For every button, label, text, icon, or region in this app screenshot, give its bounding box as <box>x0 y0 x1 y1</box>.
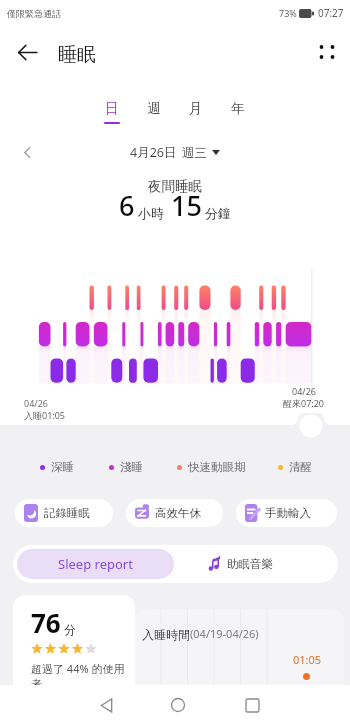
staticText: 入睡時間 <box>142 627 190 642</box>
staticText: 分鐘 <box>205 205 231 221</box>
staticText: Sleep report <box>58 555 133 573</box>
button[interactable]: 年 <box>217 99 259 125</box>
staticText: 淺睡 <box>120 460 143 474</box>
staticText: 73% <box>279 7 297 19</box>
staticText: 月 <box>189 100 203 117</box>
staticText: 記錄睡眠 <box>44 506 90 520</box>
staticText: 助眠音樂 <box>227 557 273 571</box>
staticText: 01:05 <box>293 652 322 667</box>
button[interactable]: 手動輸入 <box>236 499 337 527</box>
staticText: 手動輸入 <box>265 506 311 520</box>
staticText: 超過了 44% 的使用者 <box>31 661 135 685</box>
button[interactable]: More options <box>311 36 343 68</box>
button[interactable]: Home <box>160 687 196 723</box>
staticText: 6 <box>119 187 135 224</box>
staticText: 04/26 <box>292 385 316 397</box>
staticText: 76 <box>31 605 61 640</box>
staticText: 清醒 <box>289 460 312 474</box>
staticText: 睡眠 <box>58 43 96 67</box>
staticText: 週三 <box>182 145 207 161</box>
staticText: 高效午休 <box>155 506 201 520</box>
button[interactable]: 高效午休 <box>126 499 223 527</box>
staticText: 醒來07:20 <box>283 397 325 409</box>
staticText: 4月26日 <box>130 144 177 161</box>
staticText: 入睡01:05 <box>24 409 66 421</box>
staticText: (04/19-04/26) <box>190 626 259 641</box>
button[interactable]: Recents <box>234 687 270 723</box>
staticText: 小時 <box>138 205 164 221</box>
button[interactable]: 入睡時間 <box>134 609 344 685</box>
staticText: 07:27 <box>318 6 344 20</box>
staticText: 週 <box>147 100 161 117</box>
button[interactable]: 日 <box>91 99 133 125</box>
staticText: 04/26 <box>24 397 48 409</box>
staticText: 僅限緊急通話 <box>7 8 61 19</box>
button[interactable]: 助眠音樂 <box>208 556 273 572</box>
staticText: 快速動眼期 <box>188 460 246 474</box>
button[interactable]: 記錄睡眠 <box>15 499 113 527</box>
staticText: 分 <box>64 622 76 637</box>
button[interactable]: 週 <box>133 99 175 125</box>
button[interactable]: Back <box>88 687 124 723</box>
button[interactable]: Sleep report <box>17 549 174 579</box>
button[interactable]: 76 <box>13 595 135 685</box>
staticText: 日 <box>105 100 119 117</box>
staticText: 夜間睡眠 <box>148 178 202 195</box>
button[interactable]: 月 <box>175 99 217 125</box>
staticText: 深睡 <box>51 460 74 474</box>
button[interactable]: 4月26日 <box>130 144 220 161</box>
staticText: 年 <box>231 100 245 117</box>
button[interactable]: Back <box>11 36 43 68</box>
button[interactable]: Previous day <box>14 140 40 164</box>
staticText: 15 <box>171 187 202 224</box>
